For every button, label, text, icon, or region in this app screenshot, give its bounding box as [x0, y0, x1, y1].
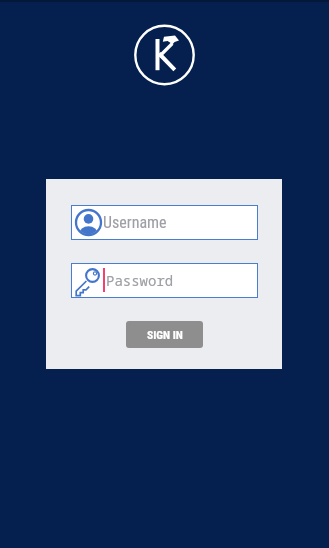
staticText: SIGN IN — [147, 328, 183, 341]
staticText: Password — [106, 271, 174, 290]
button[interactable]: Password — [71, 263, 258, 298]
button[interactable]: SIGN IN — [126, 321, 203, 348]
button[interactable]: Username — [71, 205, 258, 240]
staticText: Username — [103, 213, 167, 232]
